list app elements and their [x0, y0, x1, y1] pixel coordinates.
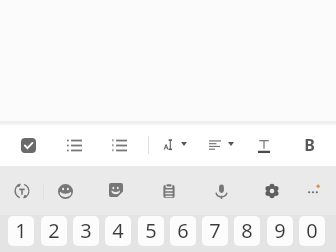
button[interactable]: 5: [138, 216, 164, 246]
button[interactable]: Expand: [221, 134, 241, 154]
button[interactable]: Numbered list: [102, 128, 136, 162]
button[interactable]: Rotate text: [5, 174, 39, 208]
button[interactable]: Text colour: [247, 129, 281, 163]
button[interactable]: Settings: [255, 174, 289, 208]
staticText: 4: [112, 217, 124, 244]
button[interactable]: 6: [170, 216, 196, 246]
button[interactable]: Bulleted list: [57, 128, 91, 162]
button[interactable]: 9: [267, 216, 293, 246]
staticText: 2: [48, 217, 60, 244]
button[interactable]: Voice input: [204, 174, 238, 208]
button[interactable]: Stickers: [99, 173, 133, 207]
button[interactable]: Text size: [152, 127, 186, 161]
button[interactable]: More options: [296, 173, 330, 207]
button[interactable]: 1: [8, 216, 34, 246]
button[interactable]: Emoji: [48, 174, 82, 208]
button[interactable]: 0: [299, 216, 325, 246]
button[interactable]: Bold: [292, 128, 326, 162]
button[interactable]: 8: [234, 216, 260, 246]
staticText: 3: [80, 217, 92, 244]
staticText: B: [304, 134, 315, 156]
staticText: 0: [306, 217, 318, 244]
button[interactable]: 2: [41, 216, 67, 246]
staticText: 8: [241, 217, 253, 244]
button[interactable]: Clipboard: [152, 174, 186, 208]
staticText: 9: [274, 217, 286, 244]
staticText: 1: [15, 217, 27, 244]
staticText: 5: [145, 217, 157, 244]
staticText: 6: [177, 217, 189, 244]
button[interactable]: 3: [73, 216, 99, 246]
button[interactable]: Expand: [174, 134, 194, 154]
staticText: 7: [209, 217, 221, 244]
button[interactable]: 4: [105, 216, 131, 246]
button[interactable]: 7: [202, 216, 228, 246]
button[interactable]: Alignment: [198, 128, 232, 162]
button[interactable]: Checklist: [11, 128, 45, 162]
